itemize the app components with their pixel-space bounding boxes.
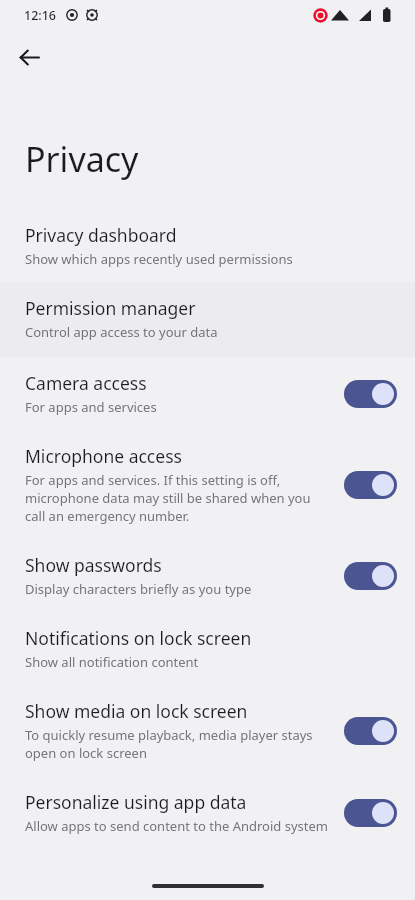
button[interactable]: Notifications on lock screen — [0, 612, 415, 685]
button[interactable]: Permission manager — [0, 282, 415, 357]
staticText: Control app access to your data — [25, 323, 218, 341]
staticText: 12:16 — [24, 7, 57, 24]
button[interactable]: Camera access toggle — [344, 380, 397, 408]
staticText: Display characters briefly as you type — [25, 580, 252, 598]
staticText: For apps and services. If this setting i… — [25, 471, 334, 525]
staticText: Permission manager — [25, 296, 196, 320]
staticText: Camera access — [25, 371, 147, 395]
staticText: Privacy dashboard — [25, 223, 177, 247]
staticText: Personalize using app data — [25, 790, 247, 814]
button[interactable]: Back — [9, 37, 49, 77]
staticText: Show which apps recently used permission… — [25, 250, 293, 268]
staticText: Microphone access — [25, 444, 182, 468]
staticText: Notifications on lock screen — [25, 626, 252, 650]
button[interactable]: Microphone access — [0, 430, 415, 539]
button[interactable]: Personalize using app data toggle — [344, 799, 397, 827]
button[interactable]: Privacy dashboard — [0, 219, 415, 282]
button[interactable]: Show passwords toggle — [344, 562, 397, 590]
button[interactable]: Personalize using app data — [0, 776, 415, 849]
staticText: Show passwords — [25, 553, 162, 577]
staticText: Show media on lock screen — [25, 699, 248, 723]
staticText: For apps and services — [25, 398, 157, 416]
button[interactable]: Microphone access toggle — [344, 471, 397, 499]
button[interactable]: Show passwords — [0, 539, 415, 612]
staticText: Show all notification content — [25, 653, 199, 671]
button[interactable]: Camera access — [0, 357, 415, 430]
staticText: Privacy — [25, 136, 139, 182]
staticText: To quickly resume playback, media player… — [25, 726, 334, 762]
staticText: Allow apps to send content to the Androi… — [25, 817, 328, 835]
button[interactable]: Show media on lock screen toggle — [344, 717, 397, 745]
button[interactable]: Show media on lock screen — [0, 685, 415, 776]
